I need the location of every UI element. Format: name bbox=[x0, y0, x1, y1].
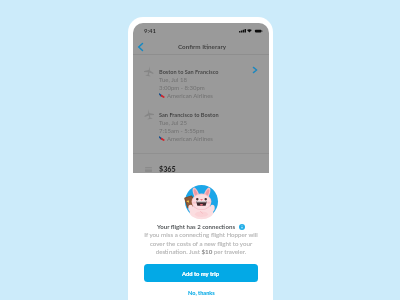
staticText: $365 bbox=[159, 165, 176, 174]
button[interactable]: San Francisco to Boston bbox=[133, 108, 269, 151]
staticText: Boston to San Francisco bbox=[159, 68, 219, 75]
staticText: American Airlines bbox=[167, 92, 213, 99]
staticText: Tue, Jul 18 bbox=[159, 76, 187, 83]
staticText: No, thanks bbox=[188, 289, 215, 296]
staticText: American Airlines bbox=[167, 135, 213, 142]
staticText: If you miss a connecting flight Hopper w… bbox=[142, 231, 260, 255]
staticText: 3:00pm - 8:30pm bbox=[159, 84, 205, 91]
staticText: Tue, Jul 25 bbox=[159, 119, 187, 126]
button[interactable]: Add to my trip bbox=[144, 264, 258, 282]
staticText: Your flight has 2 connections bbox=[157, 223, 236, 230]
staticText: Confirm Itinerary bbox=[178, 43, 227, 51]
button[interactable]: Back bbox=[133, 39, 148, 55]
staticText: Add to my trip bbox=[182, 270, 220, 277]
button[interactable]: No, thanks bbox=[180, 287, 223, 298]
staticText: San Francisco to Boston bbox=[159, 111, 219, 118]
button[interactable]: Boston to San Francisco bbox=[133, 65, 269, 108]
staticText: 7:15am - 5:55pm bbox=[159, 127, 205, 134]
staticText: 9:41 bbox=[144, 27, 156, 34]
